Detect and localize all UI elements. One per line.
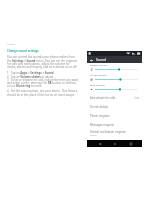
button[interactable]: Back bbox=[96, 140, 103, 147]
staticText: Media volume bbox=[90, 63, 107, 66]
staticText: Tethys bbox=[90, 134, 97, 137]
button[interactable]: Media volume bbox=[87, 63, 142, 73]
button[interactable]: Home bbox=[111, 140, 118, 147]
button[interactable]: Navigate up bbox=[88, 57, 94, 63]
staticText: Default notification ringtone bbox=[90, 130, 126, 134]
staticText: Phone ringtone bbox=[90, 114, 110, 118]
staticText: Also vibrate for calls bbox=[90, 96, 116, 100]
button[interactable]: Default notification ringtone bbox=[87, 129, 142, 138]
button[interactable]: Do not disturb bbox=[87, 102, 142, 111]
staticText: GUIDES bbox=[7, 43, 16, 46]
button[interactable]: Alarm volume bbox=[87, 73, 142, 83]
staticText: 4. For the exact options, see your devic… bbox=[7, 89, 79, 96]
staticText: Messages ringtone bbox=[90, 123, 115, 127]
staticText: 1. Tap on Apps > Settings > Sound. 2. Ta… bbox=[7, 71, 79, 87]
button[interactable]: Ring volume bbox=[87, 83, 142, 93]
button[interactable]: Also vibrate for calls bbox=[87, 93, 142, 102]
staticText: Do not disturb bbox=[90, 105, 109, 109]
staticText: Alarm volume bbox=[90, 73, 107, 76]
staticText: Ring volume bbox=[90, 83, 105, 86]
staticText: You can control the sounds your phone ma… bbox=[7, 55, 79, 68]
staticText: Change sound settings bbox=[7, 49, 39, 53]
button[interactable]: Messages ringtone bbox=[87, 120, 142, 129]
button[interactable]: Recent apps bbox=[127, 140, 134, 147]
button[interactable]: Phone ringtone bbox=[87, 111, 142, 120]
staticText: Sound bbox=[96, 57, 107, 62]
